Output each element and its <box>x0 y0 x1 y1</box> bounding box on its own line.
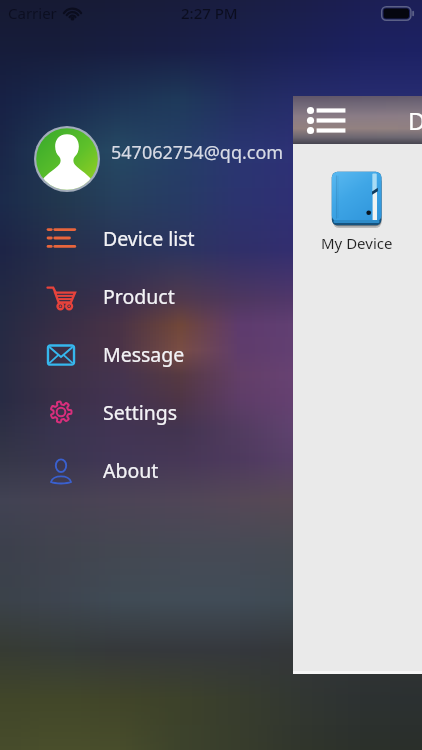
button[interactable]: About <box>0 448 422 492</box>
staticText: Settings <box>103 399 178 426</box>
staticText: 547062754@qq.com <box>111 140 284 165</box>
staticText: D <box>408 104 422 137</box>
button[interactable]: Settings <box>0 390 422 434</box>
button[interactable]: Product <box>0 274 422 318</box>
button[interactable]: My Device <box>309 171 404 253</box>
button[interactable]: Message <box>0 332 422 376</box>
staticText: 2:27 PM <box>181 3 238 23</box>
staticText: About <box>103 457 159 484</box>
staticText: Carrier <box>8 3 57 23</box>
staticText: My Device <box>321 233 393 253</box>
staticText: Message <box>103 341 185 368</box>
button[interactable]: Menu <box>301 96 353 144</box>
staticText: Device list <box>103 225 195 252</box>
staticText: Product <box>103 283 175 310</box>
button[interactable]: Device list <box>0 216 422 260</box>
